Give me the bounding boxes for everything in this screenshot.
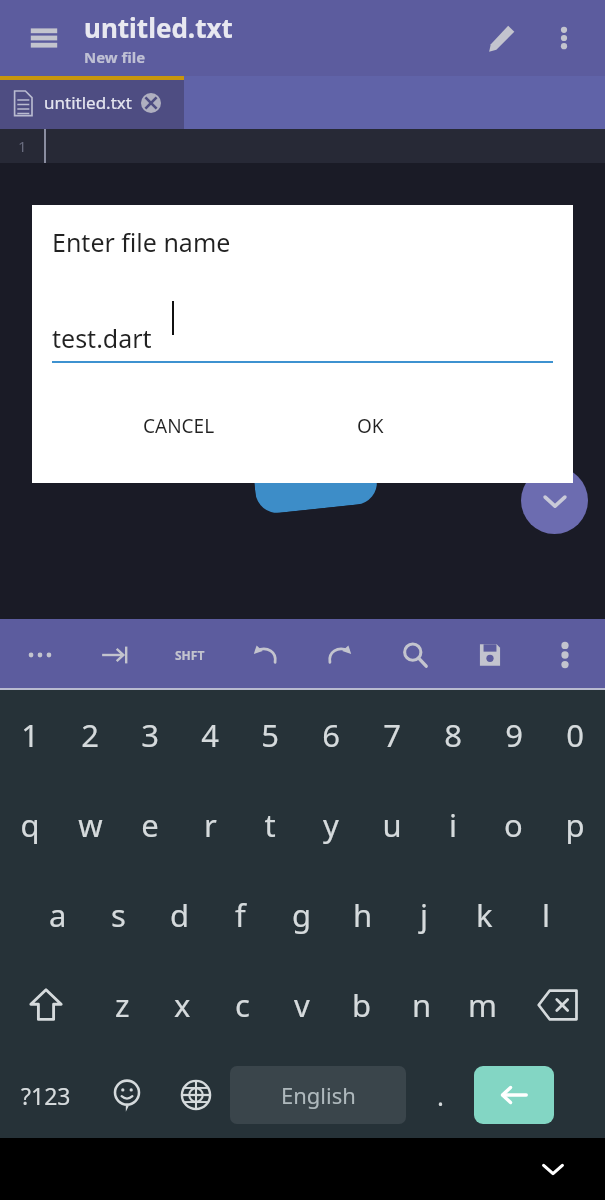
button[interactable]: j	[393, 870, 454, 960]
staticText: 1	[18, 136, 27, 156]
staticText: Enter file name	[52, 225, 231, 259]
button[interactable]: untitled.txt	[0, 76, 184, 129]
button[interactable]: Emoji	[92, 1050, 162, 1140]
button[interactable]: 0	[544, 690, 605, 780]
staticText: w	[78, 804, 103, 846]
button[interactable]: CANCEL	[127, 405, 231, 447]
button[interactable]: p	[544, 780, 605, 870]
button[interactable]: r	[180, 780, 240, 870]
button[interactable]: i	[422, 780, 483, 870]
button[interactable]: a	[27, 870, 88, 960]
staticText: 1	[21, 714, 39, 756]
button[interactable]: Badge one	[245, 381, 379, 515]
staticText: test.dart	[52, 321, 152, 355]
button[interactable]: Scroll down	[521, 467, 588, 534]
staticText: i	[449, 804, 457, 846]
button[interactable]: e	[120, 780, 180, 870]
button[interactable]: s	[88, 870, 149, 960]
staticText: OK	[357, 413, 384, 439]
button[interactable]: 9	[483, 690, 544, 780]
button[interactable]: Edit	[477, 13, 527, 63]
button[interactable]: 1	[0, 690, 60, 780]
button[interactable]: Search	[389, 629, 441, 681]
button[interactable]: More	[14, 629, 66, 681]
staticText: 6	[322, 714, 340, 756]
staticText: b	[352, 984, 372, 1026]
staticText: j	[420, 894, 428, 936]
button[interactable]: Backspace	[512, 960, 604, 1050]
button[interactable]: 3	[120, 690, 180, 780]
button[interactable]: m	[452, 960, 512, 1050]
staticText: ?123	[21, 1080, 71, 1111]
staticText: g	[292, 894, 312, 936]
staticText: e	[141, 804, 159, 846]
button[interactable]: Menu	[18, 12, 70, 64]
button[interactable]: h	[332, 870, 393, 960]
staticText: 2	[81, 714, 99, 756]
staticText: d	[170, 894, 190, 936]
staticText: CANCEL	[143, 413, 215, 439]
staticText: a	[49, 894, 67, 936]
staticText: u	[382, 804, 402, 846]
button[interactable]: l	[515, 870, 576, 960]
staticText: c	[235, 984, 250, 1026]
button[interactable]: More options	[539, 13, 589, 63]
button[interactable]: Shift	[0, 960, 92, 1050]
staticText: New file	[84, 47, 146, 67]
staticText: English	[281, 1080, 356, 1110]
button[interactable]: 4	[180, 690, 240, 780]
button[interactable]: w	[60, 780, 120, 870]
button[interactable]: Save	[464, 629, 516, 681]
button[interactable]: .	[406, 1050, 474, 1140]
button[interactable]: SHFT	[164, 629, 216, 681]
staticText: m	[468, 984, 497, 1026]
button[interactable]: c	[212, 960, 272, 1050]
button[interactable]: d	[149, 870, 210, 960]
button[interactable]: Undo	[239, 629, 291, 681]
button[interactable]: b	[332, 960, 392, 1050]
staticText: 3	[141, 714, 159, 756]
button[interactable]: Change language	[162, 1050, 230, 1140]
staticText: t	[264, 804, 276, 846]
staticText: 5	[261, 714, 279, 756]
staticText: 8	[444, 714, 462, 756]
staticText: l	[542, 894, 550, 936]
staticText: y	[323, 804, 339, 846]
staticText: q	[20, 804, 40, 846]
button[interactable]: OK	[341, 405, 400, 447]
button[interactable]: English	[230, 1066, 406, 1124]
button[interactable]: o	[483, 780, 544, 870]
button[interactable]: u	[361, 780, 422, 870]
staticText: untitled.txt	[44, 91, 132, 114]
button[interactable]: t	[240, 780, 300, 870]
staticText: k	[476, 894, 493, 936]
button[interactable]: Redo	[314, 629, 366, 681]
button[interactable]: Tab	[89, 629, 141, 681]
button[interactable]: Close tab	[140, 92, 162, 114]
staticText: h	[353, 894, 373, 936]
button[interactable]: 8	[422, 690, 483, 780]
button[interactable]: 6	[300, 690, 361, 780]
button[interactable]: n	[392, 960, 452, 1050]
staticText: .	[437, 1078, 444, 1113]
staticText: 7	[383, 714, 401, 756]
button[interactable]: f	[210, 870, 271, 960]
staticText: p	[565, 804, 585, 846]
button[interactable]: 2	[60, 690, 120, 780]
button[interactable]: g	[271, 870, 332, 960]
button[interactable]: Enter	[474, 1066, 554, 1124]
button[interactable]: 7	[361, 690, 422, 780]
button[interactable]: z	[92, 960, 152, 1050]
button[interactable]: More options	[539, 629, 591, 681]
button[interactable]: ?123	[0, 1050, 92, 1140]
button[interactable]: y	[300, 780, 361, 870]
button[interactable]: k	[454, 870, 515, 960]
button[interactable]: x	[152, 960, 212, 1050]
staticText: z	[115, 984, 130, 1026]
staticText: f	[235, 894, 246, 936]
button[interactable]: Hide keyboard	[531, 1147, 575, 1191]
button[interactable]: v	[272, 960, 332, 1050]
staticText: v	[294, 984, 310, 1026]
button[interactable]: q	[0, 780, 60, 870]
button[interactable]: 5	[240, 690, 300, 780]
